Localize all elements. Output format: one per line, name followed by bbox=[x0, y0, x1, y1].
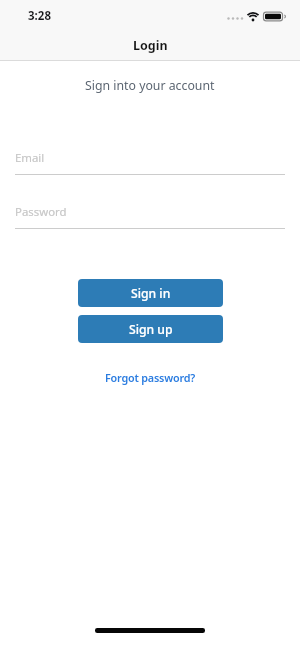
button[interactable]: Password bbox=[15, 204, 285, 229]
button[interactable]: Sign up bbox=[78, 315, 223, 343]
button[interactable]: Email bbox=[15, 150, 285, 175]
staticText: Forgot password? bbox=[105, 370, 196, 385]
staticText: Login bbox=[133, 37, 168, 54]
button[interactable]: Sign in bbox=[78, 279, 223, 307]
staticText: Sign into your account bbox=[85, 77, 215, 94]
button[interactable]: Forgot password? bbox=[105, 370, 196, 385]
staticText: Email bbox=[15, 150, 45, 166]
staticText: Sign up bbox=[129, 321, 173, 338]
staticText: Password bbox=[15, 204, 67, 220]
staticText: 3:28 bbox=[28, 8, 51, 24]
staticText: Sign in bbox=[131, 285, 171, 302]
